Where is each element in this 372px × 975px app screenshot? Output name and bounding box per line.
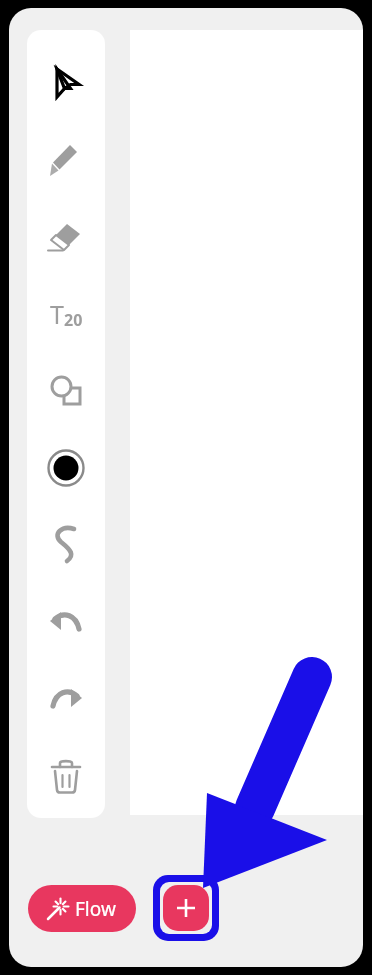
button[interactable]: Select tool (27, 44, 105, 121)
button[interactable]: Pen tool (27, 121, 105, 198)
button[interactable]: T (27, 275, 105, 352)
staticText: Flow (75, 896, 116, 922)
button[interactable]: Eraser tool (27, 198, 105, 275)
staticText: T (50, 297, 64, 331)
button[interactable]: Color picker (27, 429, 105, 506)
button[interactable]: Undo (27, 583, 105, 660)
staticText: 20 (64, 309, 83, 331)
button[interactable]: Flow (28, 885, 136, 932)
button[interactable]: Add (163, 885, 209, 931)
button[interactable]: Redo (27, 660, 105, 737)
button[interactable]: Lasso tool (27, 506, 105, 583)
button[interactable]: Shapes tool (27, 352, 105, 429)
button[interactable]: Delete (27, 737, 105, 814)
